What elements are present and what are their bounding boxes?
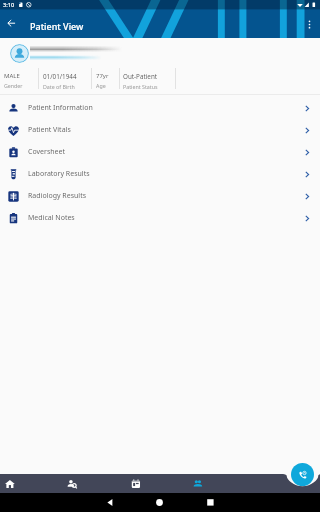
button[interactable]: Home <box>139 493 180 512</box>
staticText: 01/01/1944 <box>43 72 77 81</box>
staticText: Date of Birth <box>43 83 75 90</box>
staticText: Coversheet <box>28 147 66 157</box>
button[interactable]: Home <box>4 474 16 493</box>
staticText: Patient View <box>30 20 84 32</box>
button[interactable]: Back <box>90 493 131 512</box>
button[interactable]: Recents <box>190 493 231 512</box>
staticText: Patient Information <box>28 103 93 113</box>
button[interactable]: Patient Information <box>0 97 320 119</box>
staticText: 3:10 <box>3 1 15 9</box>
button[interactable]: Coversheet <box>0 141 320 163</box>
button[interactable]: Patients <box>192 474 204 493</box>
button[interactable]: Medical Notes <box>0 207 320 229</box>
staticText: Laboratory Results <box>28 169 90 179</box>
staticText: 77yr <box>96 72 109 80</box>
button[interactable]: Patient Vitals <box>0 119 320 141</box>
staticText: MALE <box>4 72 20 80</box>
button[interactable]: Patient search <box>66 474 78 493</box>
button[interactable]: More options <box>301 16 317 32</box>
staticText: Patient Vitals <box>28 125 71 135</box>
staticText: Medical Notes <box>28 213 75 223</box>
staticText: Age <box>96 82 106 89</box>
button[interactable]: Calendar <box>130 474 142 493</box>
button[interactable]: Call patient <box>291 463 314 486</box>
staticText: Radiology Results <box>28 191 87 201</box>
staticText: Gender <box>4 82 23 89</box>
staticText: Patient Status <box>123 83 158 90</box>
button[interactable]: Laboratory Results <box>0 163 320 185</box>
button[interactable]: Radiology Results <box>0 185 320 207</box>
button[interactable]: Back <box>3 15 19 31</box>
staticText: Out-Patient <box>123 72 158 81</box>
